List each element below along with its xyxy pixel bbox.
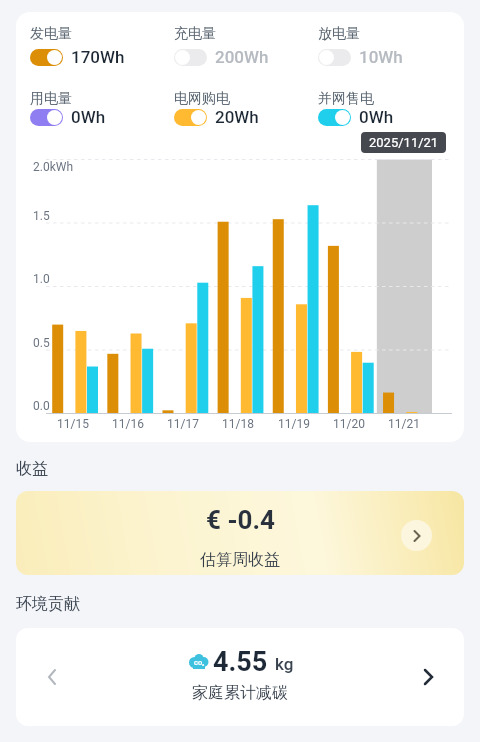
staticText: CO₂ bbox=[194, 659, 205, 666]
staticText: 放电量 bbox=[318, 25, 360, 43]
staticText: 0.0 bbox=[33, 399, 50, 413]
staticText: 收益 bbox=[16, 459, 48, 479]
button[interactable] bbox=[30, 49, 63, 66]
staticText: 0Wh bbox=[359, 107, 394, 127]
staticText: 家庭累计减碳 bbox=[192, 683, 288, 703]
staticText: 1.5 bbox=[33, 209, 50, 223]
staticText: 并网售电 bbox=[318, 90, 374, 108]
staticText: 200Wh bbox=[215, 47, 269, 67]
staticText: 充电量 bbox=[174, 25, 216, 43]
staticText: 0Wh bbox=[71, 107, 106, 127]
staticText: 2.0kWh bbox=[33, 160, 73, 174]
staticText: 用电量 bbox=[30, 90, 72, 108]
button[interactable] bbox=[318, 49, 351, 66]
staticText: 11/19 bbox=[278, 417, 310, 431]
staticText: 环境贡献 bbox=[16, 594, 80, 614]
staticText: 20Wh bbox=[215, 107, 259, 127]
staticText: 估算周收益 bbox=[200, 550, 280, 570]
staticText: 11/21 bbox=[388, 417, 420, 431]
button[interactable] bbox=[318, 109, 351, 126]
button[interactable] bbox=[174, 49, 207, 66]
button[interactable]: CO₂ bbox=[16, 628, 464, 726]
staticText: 11/16 bbox=[112, 417, 144, 431]
staticText: 电网购电 bbox=[174, 90, 230, 108]
button[interactable] bbox=[30, 109, 63, 126]
staticText: € -0.4 bbox=[206, 505, 275, 535]
staticText: 170Wh bbox=[71, 47, 125, 67]
staticText: 11/15 bbox=[57, 417, 89, 431]
button[interactable]: € -0.4 bbox=[16, 491, 464, 575]
button[interactable] bbox=[174, 109, 207, 126]
staticText: 10Wh bbox=[359, 47, 403, 67]
staticText: 11/20 bbox=[333, 417, 365, 431]
staticText: kg bbox=[275, 654, 294, 674]
staticText: 11/18 bbox=[222, 417, 254, 431]
staticText: 2025/11/21 bbox=[369, 135, 439, 150]
staticText: 1.0 bbox=[33, 272, 50, 286]
staticText: 11/17 bbox=[167, 417, 199, 431]
staticText: 0.5 bbox=[33, 336, 50, 350]
staticText: 4.55 bbox=[213, 646, 268, 678]
staticText: 发电量 bbox=[30, 25, 72, 43]
